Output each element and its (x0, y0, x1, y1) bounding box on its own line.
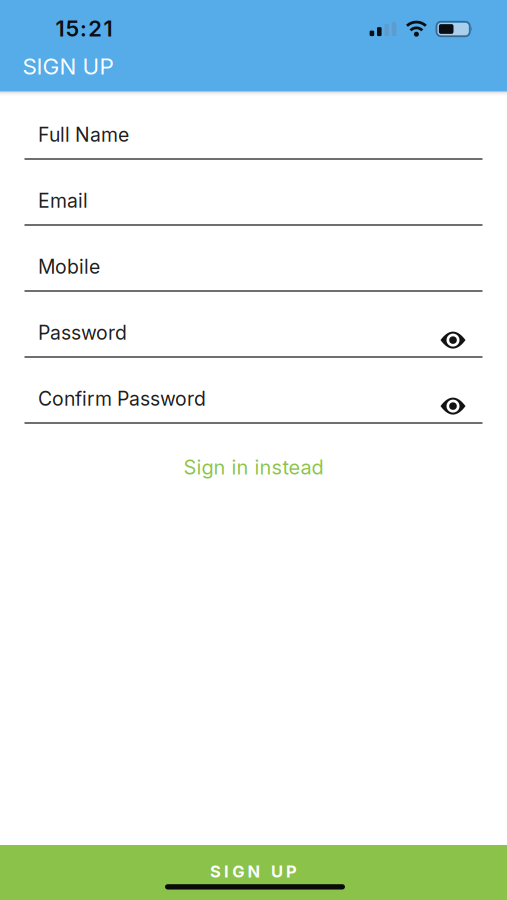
staticText: Email (38, 189, 88, 212)
staticText: U (271, 861, 283, 881)
staticText: S (210, 861, 221, 881)
button[interactable]: Password (24, 292, 482, 358)
button[interactable]: Sign in instead (183, 424, 323, 479)
staticText: Password (38, 321, 127, 344)
staticText: G (232, 861, 244, 881)
button[interactable]: Show password (440, 398, 482, 415)
staticText: 1 (55, 15, 64, 42)
staticText: N (247, 861, 260, 881)
staticText: P (286, 861, 297, 881)
button[interactable]: Email (24, 160, 482, 226)
staticText: I (224, 861, 229, 881)
staticText: SIGN UP (22, 53, 113, 80)
button[interactable]: Confirm Password (24, 358, 482, 424)
button[interactable]: Full Name (24, 94, 482, 160)
staticText: : (80, 15, 87, 42)
button[interactable]: Mobile (24, 226, 482, 292)
button[interactable]: Show password (440, 332, 482, 349)
staticText: Mobile (38, 255, 100, 278)
staticText: Sign in instead (183, 455, 323, 479)
staticText: Confirm Password (38, 387, 206, 410)
staticText: 5 (66, 15, 79, 42)
staticText: 1 (104, 15, 113, 42)
button[interactable]: S (0, 845, 507, 900)
staticText: Full Name (38, 123, 129, 146)
staticText: 2 (88, 15, 102, 42)
